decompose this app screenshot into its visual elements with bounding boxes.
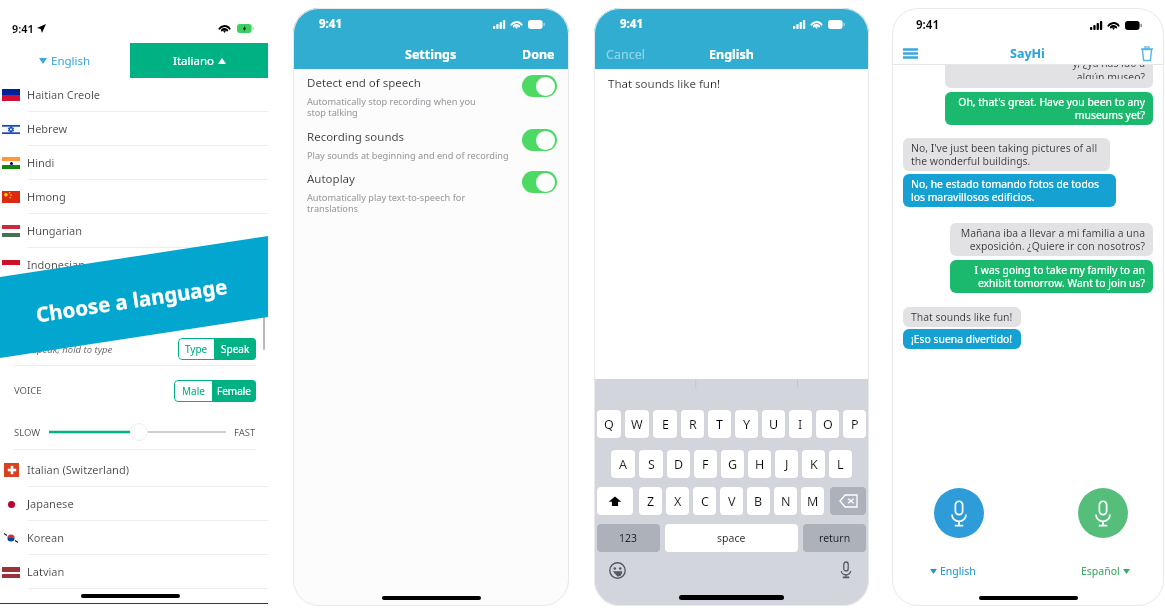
- button[interactable]: G: [721, 450, 744, 478]
- button[interactable]: H: [748, 450, 771, 478]
- button[interactable]: M: [801, 487, 824, 515]
- button[interactable]: Recording sounds: [293, 129, 569, 162]
- button[interactable]: No, he estado tomando fotos de todos los…: [903, 174, 1116, 207]
- button[interactable]: Indonesian: [0, 248, 268, 282]
- staticText: T: [716, 416, 723, 433]
- staticText: 9:41: [319, 16, 342, 32]
- staticText: That sounds like fun!: [608, 76, 721, 92]
- button[interactable]: U: [762, 410, 785, 438]
- button[interactable]: Q: [597, 410, 621, 438]
- staticText: space: [717, 531, 746, 545]
- button[interactable]: Korean: [0, 521, 268, 555]
- button[interactable]: English: [930, 564, 976, 578]
- staticText: Hungarian: [27, 223, 83, 238]
- button[interactable]: Hindi: [0, 146, 268, 180]
- button[interactable]: R: [681, 410, 704, 438]
- button[interactable]: Haitian Creole: [0, 78, 268, 112]
- button[interactable]: T: [708, 410, 731, 438]
- button[interactable]: F: [694, 450, 717, 478]
- button[interactable]: I was going to take my family to an exhi…: [950, 260, 1153, 293]
- staticText: Choose a language: [34, 272, 230, 328]
- staticText: Latvian: [27, 564, 65, 579]
- button[interactable]: That sounds like fun!: [903, 307, 1021, 327]
- button[interactable]: J: [775, 450, 798, 478]
- button[interactable]: W: [625, 410, 649, 438]
- button[interactable]: Hebrew: [0, 112, 268, 146]
- staticText: H: [755, 456, 765, 473]
- button[interactable]: [522, 129, 557, 151]
- button[interactable]: Y: [735, 410, 758, 438]
- button[interactable]: Italian (Switzerland): [0, 453, 268, 487]
- staticText: I was going to take my family to an exhi…: [958, 263, 1145, 290]
- button[interactable]: Dictation: [837, 561, 855, 579]
- button[interactable]: S: [639, 450, 663, 478]
- staticText: Type: [185, 342, 208, 356]
- button[interactable]: Male: [174, 380, 212, 402]
- staticText: Oh, that's great. Have you been to any m…: [953, 95, 1145, 122]
- button[interactable]: Detect end of speech: [293, 75, 569, 119]
- button[interactable]: Mañana iba a llevar a mi familia a una e…: [950, 223, 1153, 256]
- button[interactable]: V: [720, 487, 743, 515]
- button[interactable]: N: [774, 487, 797, 515]
- button[interactable]: Delete conversation: [1131, 44, 1153, 62]
- button[interactable]: D: [667, 450, 690, 478]
- button[interactable]: X: [666, 487, 689, 515]
- button[interactable]: Z: [639, 487, 662, 515]
- button[interactable]: Female: [212, 380, 256, 402]
- button[interactable]: return: [803, 524, 866, 552]
- button[interactable]: English: [0, 43, 130, 78]
- staticText: Automatically play text-to-speech for tr…: [307, 191, 466, 215]
- button[interactable]: [522, 75, 557, 97]
- staticText: Italian (Switzerland): [27, 462, 129, 477]
- button[interactable]: Type: [178, 338, 214, 360]
- button[interactable]: [130, 423, 148, 441]
- button[interactable]: No, I've just been taking pictures of al…: [903, 138, 1110, 171]
- button[interactable]: Emoji: [608, 561, 626, 579]
- button[interactable]: A: [611, 450, 635, 478]
- staticText: 123: [619, 531, 638, 545]
- button[interactable]: Oh, that's great. Have you been to any m…: [945, 92, 1153, 125]
- button[interactable]: Done: [522, 46, 555, 63]
- button[interactable]: E: [653, 410, 677, 438]
- staticText: K: [810, 456, 818, 473]
- button[interactable]: C: [693, 487, 716, 515]
- staticText: V: [728, 493, 736, 510]
- staticText: W: [631, 416, 643, 433]
- button[interactable]: [522, 171, 557, 193]
- staticText: Recording sounds: [307, 129, 405, 145]
- button[interactable]: 123: [597, 524, 660, 552]
- button[interactable]: Español: [1081, 564, 1130, 578]
- button[interactable]: B: [747, 487, 770, 515]
- button[interactable]: Hmong: [0, 180, 268, 214]
- button[interactable]: O: [816, 410, 839, 438]
- button[interactable]: Record Spanish: [1078, 488, 1128, 538]
- staticText: Haitian Creole: [27, 87, 100, 102]
- staticText: M: [807, 493, 819, 510]
- staticText: N: [781, 493, 791, 510]
- button[interactable]: Menu: [903, 44, 925, 62]
- staticText: P: [851, 416, 859, 433]
- staticText: A: [619, 456, 627, 473]
- button[interactable]: K: [802, 450, 825, 478]
- button[interactable]: Cancel: [606, 46, 645, 63]
- button[interactable]: Italiano: [130, 43, 268, 78]
- staticText: Hindi: [27, 155, 55, 170]
- staticText: C: [701, 493, 709, 510]
- button[interactable]: space: [665, 524, 798, 552]
- button[interactable]: Speak: [214, 338, 256, 360]
- staticText: Male: [182, 384, 205, 398]
- button[interactable]: Latvian: [0, 555, 268, 589]
- button[interactable]: Japanese: [0, 487, 268, 521]
- button[interactable]: Backspace: [830, 487, 866, 515]
- button[interactable]: L: [829, 450, 852, 478]
- staticText: Q: [604, 416, 614, 433]
- button[interactable]: y, ¿ya has ido a algún museo?: [945, 65, 1153, 88]
- button[interactable]: Shift: [597, 487, 633, 515]
- button[interactable]: Record English: [934, 488, 984, 538]
- button[interactable]: I: [789, 410, 812, 438]
- button[interactable]: Hungarian: [0, 214, 268, 248]
- button[interactable]: Autoplay: [293, 171, 569, 215]
- staticText: Español: [1081, 564, 1120, 578]
- button[interactable]: ¡Eso suena divertido!: [903, 329, 1021, 349]
- button[interactable]: P: [843, 410, 866, 438]
